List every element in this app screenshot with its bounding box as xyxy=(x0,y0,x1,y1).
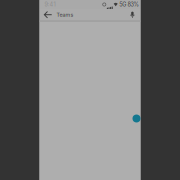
button[interactable]: Assistant xyxy=(131,113,142,124)
button[interactable]: Voice search xyxy=(128,9,136,21)
staticText: 9:41 xyxy=(44,1,55,8)
button[interactable]: Back xyxy=(43,9,52,21)
staticText: 83% xyxy=(127,1,138,8)
staticText: Teams xyxy=(56,11,73,18)
staticText: 5G xyxy=(119,1,126,8)
